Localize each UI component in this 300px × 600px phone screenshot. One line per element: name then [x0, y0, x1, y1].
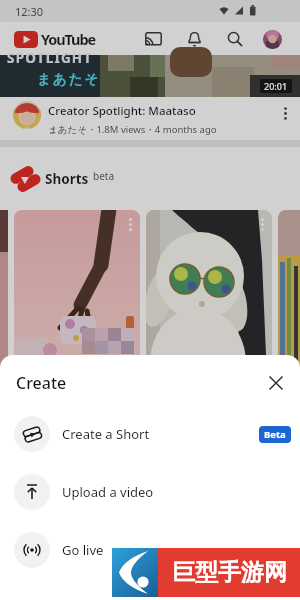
staticText: SPOTLIGHT — [7, 49, 93, 67]
button[interactable]: Create a Short — [0, 405, 300, 463]
button[interactable]: Upload a video — [0, 463, 300, 521]
staticText: 巨型手游网 — [172, 558, 287, 587]
button[interactable]: Go live — [0, 521, 300, 579]
staticText: まあたそ・1.8M views・4 months ago — [48, 123, 217, 136]
button[interactable] — [263, 30, 282, 49]
staticText: 12:30 — [15, 4, 44, 19]
button[interactable] — [278, 210, 300, 455]
staticText: Shorts — [45, 170, 89, 188]
button[interactable] — [14, 210, 140, 455]
button[interactable]: Creator Spotlight: Maataso — [0, 97, 300, 140]
staticText: Create a Short — [62, 425, 150, 443]
staticText: Go live — [62, 541, 104, 559]
staticText: まあたそ — [37, 71, 101, 88]
staticText: Beta — [264, 428, 286, 441]
staticText: Upload a video — [62, 483, 154, 501]
button[interactable]: YouTube — [14, 29, 96, 49]
button[interactable] — [139, 25, 167, 53]
button[interactable] — [221, 25, 249, 53]
button[interactable] — [146, 210, 272, 455]
staticText: Create — [16, 372, 67, 394]
staticText: beta — [93, 169, 115, 183]
staticText: Creator Spotlight: Maataso — [48, 103, 196, 119]
staticText: 20:01 — [264, 80, 288, 92]
button[interactable]: SPOTLIGHT — [0, 55, 300, 97]
button[interactable] — [180, 25, 208, 53]
staticText: YouTube — [41, 29, 96, 49]
button[interactable] — [264, 371, 288, 395]
